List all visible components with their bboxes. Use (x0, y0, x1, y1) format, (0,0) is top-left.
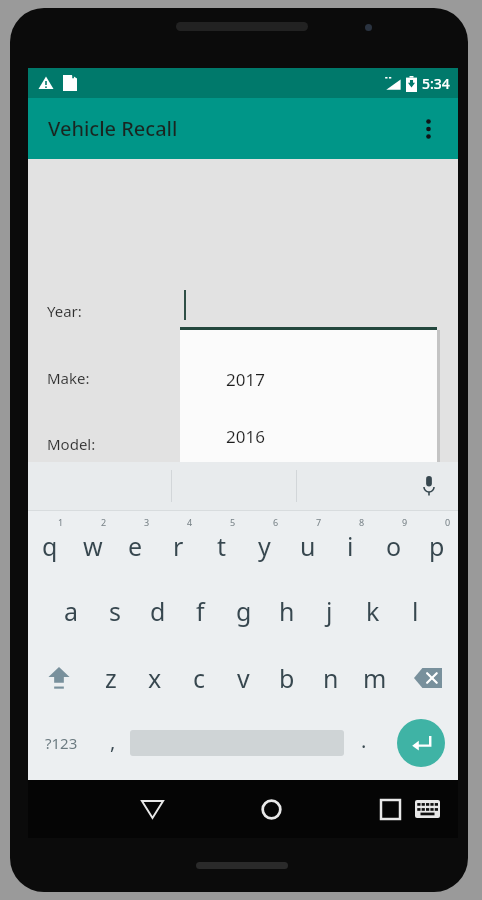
staticText: r (173, 529, 184, 563)
staticText: 4 (187, 516, 193, 528)
staticText: x (148, 661, 162, 695)
staticText: n (323, 661, 339, 695)
button[interactable]: j (308, 581, 351, 641)
button[interactable]: , (95, 712, 130, 774)
button[interactable]: x (133, 648, 177, 708)
button[interactable]: Backspace (397, 648, 458, 708)
button[interactable]: 2014 (180, 522, 437, 533)
button[interactable]: . (344, 712, 384, 774)
staticText: l (412, 594, 419, 628)
staticText: , (110, 728, 116, 755)
staticText: a (64, 594, 79, 628)
staticText: j (326, 594, 333, 628)
button[interactable]: s (93, 581, 136, 641)
staticText: s (109, 594, 121, 628)
staticText: h (279, 594, 295, 628)
staticText: z (105, 661, 117, 695)
button[interactable]: Home (225, 780, 317, 838)
staticText: y (258, 529, 271, 563)
button[interactable]: h (265, 581, 308, 641)
staticText: 1 (58, 516, 64, 528)
button[interactable]: 7 (286, 514, 329, 574)
button[interactable]: a (49, 581, 93, 641)
staticText: 5 (230, 516, 236, 528)
staticText: 8 (359, 516, 365, 528)
staticText: 3 (144, 516, 150, 528)
staticText: b (279, 661, 295, 695)
button[interactable]: Enter (384, 712, 458, 774)
button[interactable]: g (222, 581, 265, 641)
button[interactable]: Recent apps (344, 780, 436, 838)
staticText: Vehicle Recall (48, 115, 178, 142)
staticText: w (83, 529, 103, 563)
staticText: o (386, 529, 402, 563)
staticText: m (363, 661, 387, 695)
staticText: Make: (47, 368, 90, 388)
button[interactable]: 9 (372, 514, 415, 574)
button[interactable]: 6 (243, 514, 286, 574)
staticText: 9 (402, 516, 408, 528)
staticText: c (193, 661, 206, 695)
button[interactable]: k (351, 581, 394, 641)
button[interactable]: Voice input (412, 469, 446, 503)
button[interactable]: 1 (28, 514, 71, 574)
staticText: 2017 (226, 368, 265, 391)
staticText: 2014 (226, 516, 265, 527)
staticText: ?123 (45, 733, 78, 753)
button[interactable]: Back (106, 780, 198, 838)
staticText: Year: (47, 301, 82, 321)
button[interactable]: 2017 (180, 327, 437, 533)
button[interactable]: n (309, 648, 353, 708)
button[interactable]: 2017 (180, 351, 437, 408)
button[interactable]: f (179, 581, 222, 641)
button[interactable]: Space (130, 712, 344, 774)
button[interactable]: More options (406, 107, 450, 151)
button[interactable]: 2015 (180, 465, 437, 522)
button[interactable]: z (89, 648, 133, 708)
button[interactable]: Shift (28, 648, 89, 708)
staticText: . (361, 727, 367, 754)
staticText: g (236, 594, 252, 628)
staticText: 0 (445, 516, 451, 528)
staticText: 2 (101, 516, 107, 528)
button[interactable]: 4 (157, 514, 200, 574)
staticText: 6 (273, 516, 279, 528)
button[interactable]: l (394, 581, 437, 641)
button[interactable]: 2016 (180, 408, 437, 465)
button[interactable]: Switch keyboard (406, 789, 448, 829)
staticText: 7 (316, 516, 322, 528)
button[interactable]: v (221, 648, 265, 708)
button[interactable]: 2 (71, 514, 114, 574)
staticText: v (237, 661, 250, 695)
staticText: 2016 (226, 425, 265, 448)
button[interactable]: ?123 (28, 712, 95, 774)
button[interactable]: b (265, 648, 309, 708)
staticText: d (150, 594, 166, 628)
staticText: p (429, 529, 445, 563)
staticText: k (366, 594, 380, 628)
button[interactable]: 0 (415, 514, 458, 574)
staticText: e (128, 529, 143, 563)
button[interactable]: m (353, 648, 397, 708)
staticText: t (217, 529, 227, 563)
staticText: i (347, 529, 354, 563)
button[interactable]: 5 (200, 514, 243, 574)
staticText: Model: (47, 434, 96, 454)
button[interactable]: 8 (329, 514, 372, 574)
button[interactable]: c (177, 648, 221, 708)
button[interactable]: d (136, 581, 179, 641)
staticText: 5:34 (422, 74, 450, 93)
button[interactable]: 3 (114, 514, 157, 574)
staticText: f (196, 594, 205, 628)
staticText: q (42, 529, 58, 563)
staticText: u (300, 529, 316, 563)
